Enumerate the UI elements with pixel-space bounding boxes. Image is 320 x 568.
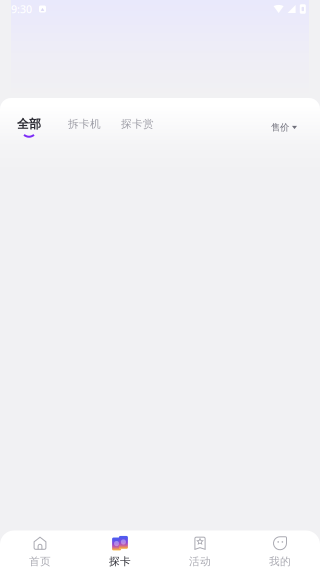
- staticText: 9:30: [11, 2, 32, 16]
- staticText: 活动: [189, 555, 211, 568]
- button[interactable]: 售价: [271, 117, 297, 138]
- staticText: 我的: [269, 555, 291, 568]
- button[interactable]: 全部: [17, 117, 41, 138]
- staticText: 探卡: [109, 555, 131, 568]
- button[interactable]: 首页: [0, 536, 80, 568]
- button[interactable]: 我的: [240, 536, 320, 568]
- staticText: 探卡赏: [121, 117, 154, 130]
- staticText: 拆卡机: [68, 117, 101, 130]
- button[interactable]: 探卡: [80, 536, 160, 568]
- button[interactable]: 拆卡机: [68, 117, 101, 138]
- staticText: 售价: [271, 122, 289, 133]
- button[interactable]: 活动: [160, 536, 240, 568]
- staticText: 全部: [17, 117, 41, 131]
- staticText: 首页: [29, 555, 51, 568]
- button[interactable]: 探卡赏: [121, 117, 154, 138]
